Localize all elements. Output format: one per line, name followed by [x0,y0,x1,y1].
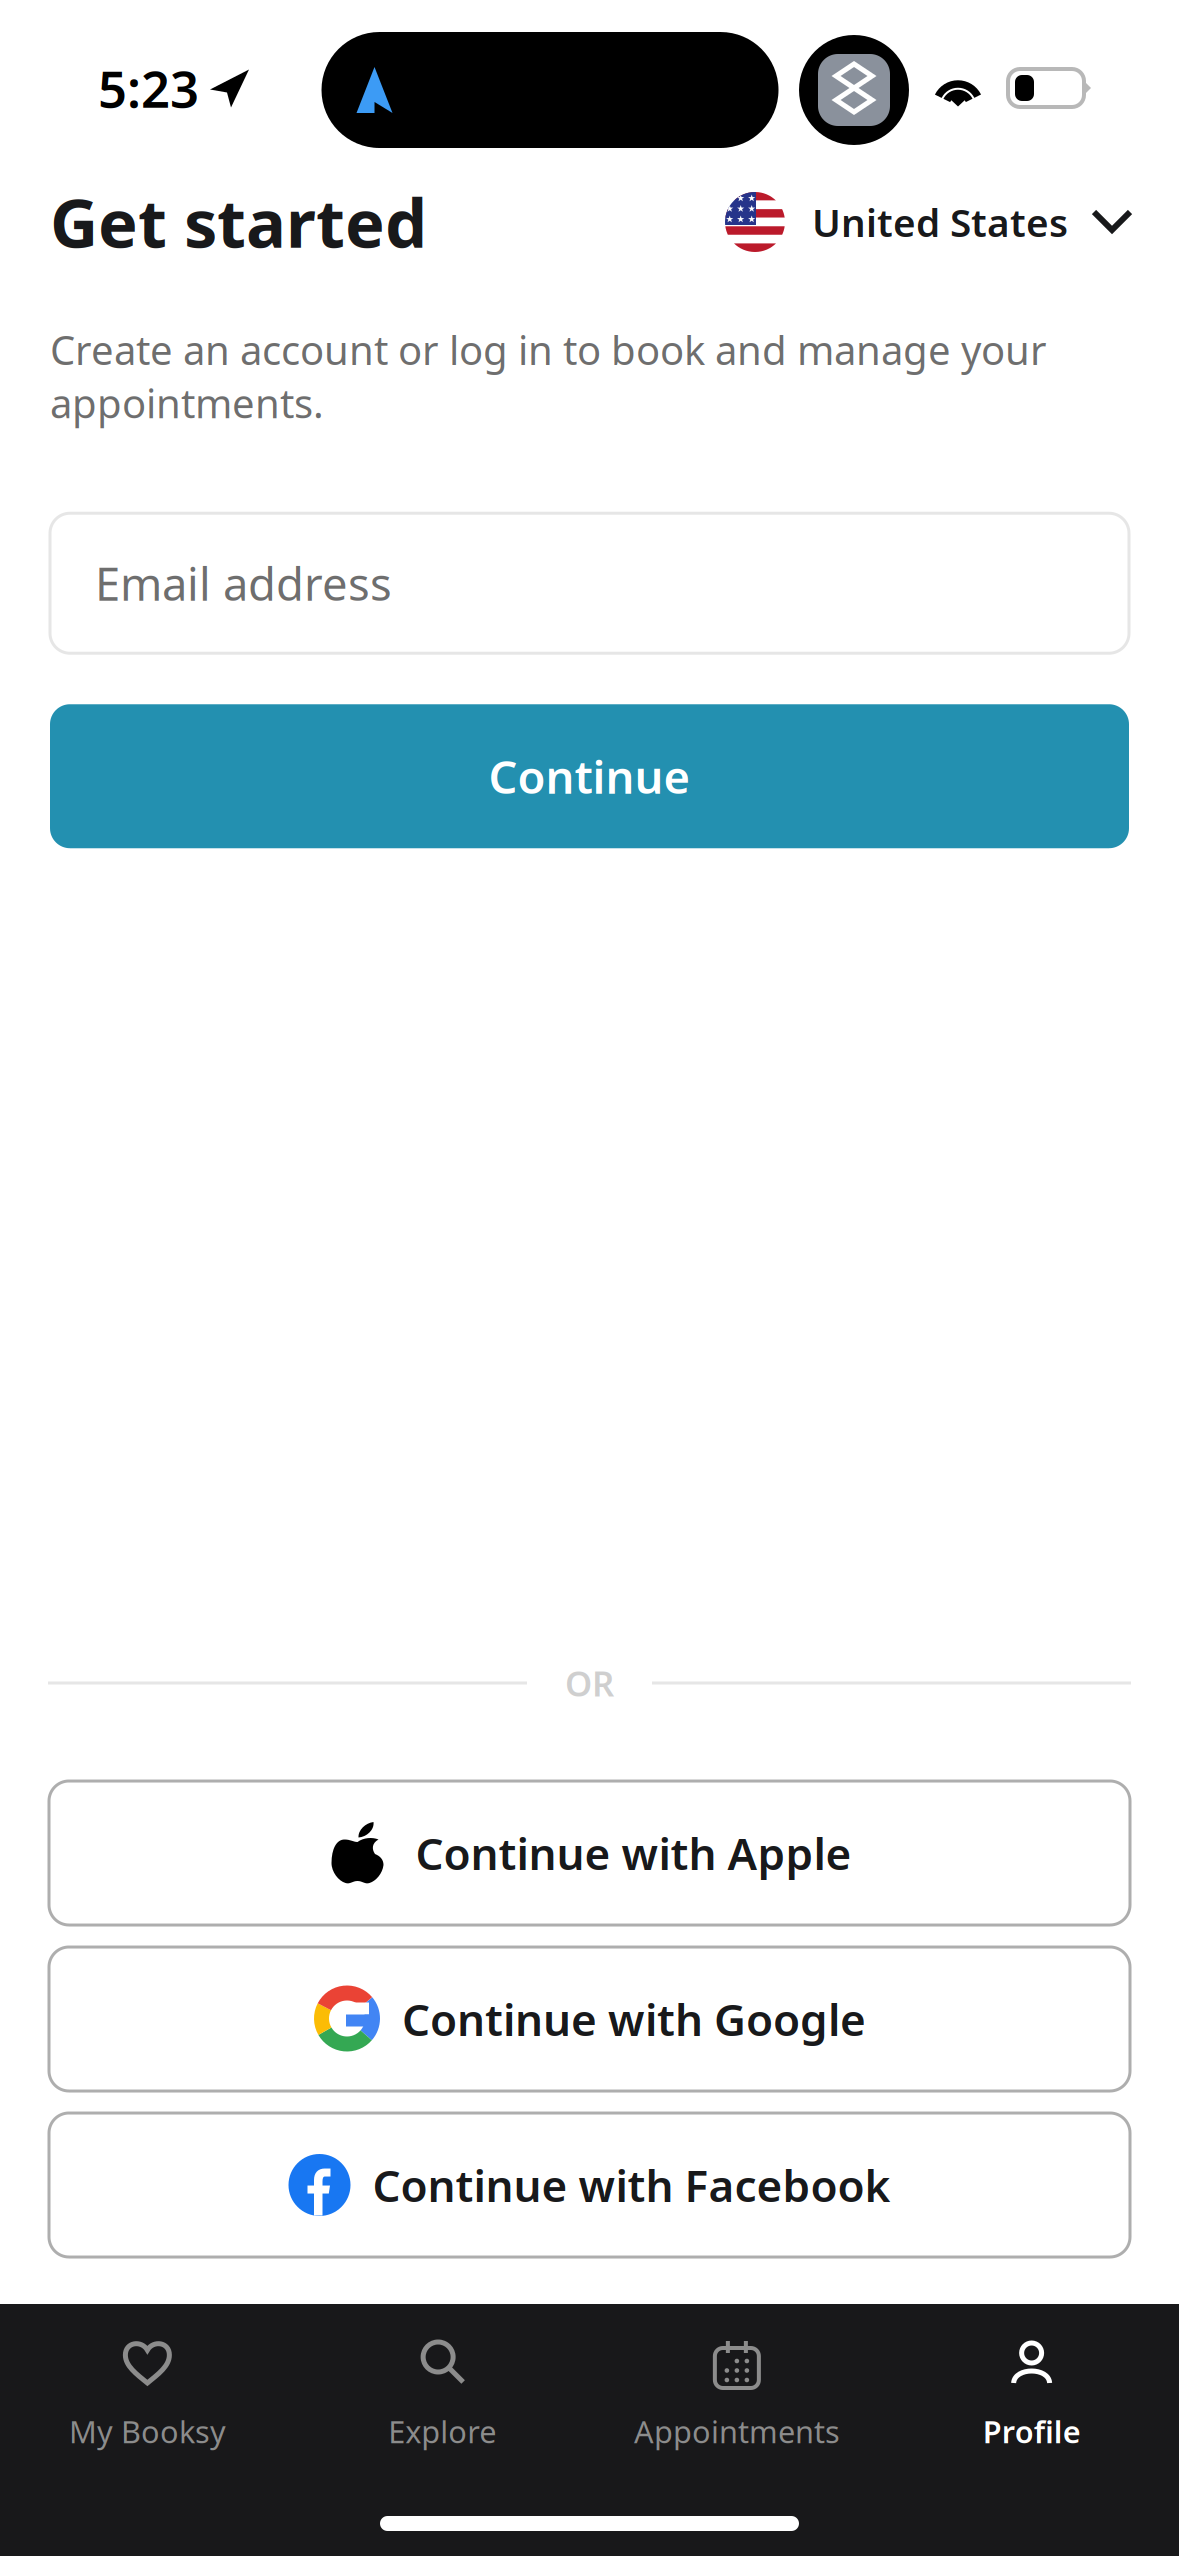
staticText: Get started [50,178,427,266]
staticText: Continue with Apple [415,1824,851,1882]
staticText: ★ ★ ★ [725,193,755,203]
button[interactable]: Explore [295,2304,590,2462]
button[interactable]: Continue with Apple [49,1781,1130,1925]
staticText: My Booksy [69,2411,226,2452]
button[interactable]: ★ ★ ★ [721,192,1129,252]
staticText: Email address [95,553,392,613]
staticText: Appointments [634,2411,840,2452]
staticText: ★ ★ ★ [725,214,755,224]
staticText: OR [565,1660,614,1706]
button[interactable]: Appointments [589,2304,884,2462]
staticText: ★ ★ ★ [725,203,755,214]
staticText: United States [812,196,1068,248]
button[interactable]: Profile [884,2304,1179,2462]
button[interactable]: Continue with Facebook [49,2113,1130,2257]
staticText: Explore [388,2411,496,2452]
button[interactable]: Continue with Google [49,1947,1130,2091]
button[interactable]: Continue [50,704,1129,848]
staticText: 5:23 [98,54,199,122]
staticText: Create an account or log in to book and … [50,323,1047,429]
staticText: Continue [488,746,690,806]
button[interactable]: My Booksy [0,2304,295,2462]
staticText: Continue with Facebook [372,2156,890,2214]
button[interactable]: Email address [50,513,1129,653]
staticText: Profile [983,2411,1081,2452]
staticText: Continue with Google [402,1990,866,2048]
